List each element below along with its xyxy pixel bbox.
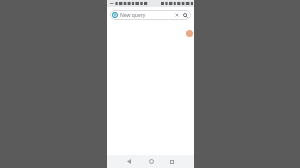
staticText: New query xyxy=(120,12,173,19)
button[interactable]: Recent apps xyxy=(165,156,179,167)
button[interactable]: Back xyxy=(122,156,136,167)
button[interactable]: Search xyxy=(181,11,189,19)
button[interactable]: Clear query xyxy=(173,11,181,19)
button[interactable]: New query xyxy=(110,10,191,20)
button[interactable]: Floating indicator xyxy=(186,30,193,37)
button[interactable]: Home xyxy=(144,156,158,167)
